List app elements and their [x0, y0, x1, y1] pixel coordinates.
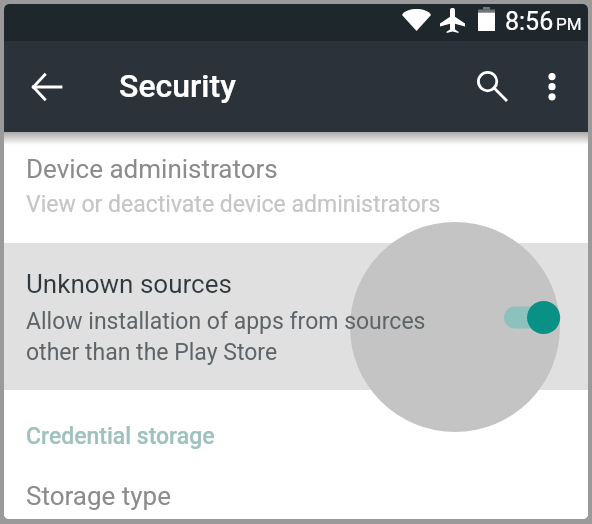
staticText: PM	[556, 14, 582, 34]
button[interactable]: Unknown sources	[4, 243, 588, 390]
button[interactable]: Storage type	[4, 460, 588, 511]
button[interactable]: More options	[524, 59, 580, 115]
staticText: 8:56	[505, 7, 554, 36]
staticText: Device administrators	[26, 154, 278, 184]
staticText: Credential storage	[26, 423, 215, 450]
button[interactable]: Device administrators	[4, 149, 588, 243]
staticText: View or deactivate device administrators	[26, 191, 441, 218]
button[interactable]: Back	[18, 59, 74, 115]
button[interactable]: Search	[464, 57, 520, 113]
staticText: Allow installation of apps from sources …	[26, 308, 426, 365]
staticText: Unknown sources	[26, 269, 232, 299]
staticText: Security	[119, 67, 236, 105]
staticText: Storage type	[26, 481, 171, 511]
